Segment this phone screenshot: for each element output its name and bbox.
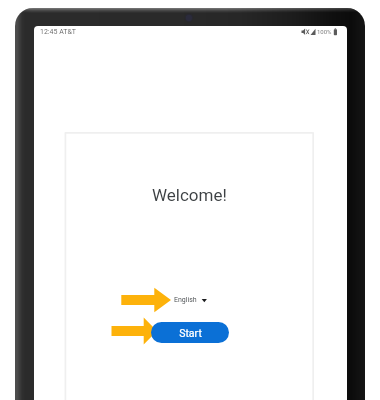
staticText: 100%	[317, 28, 332, 35]
staticText: 12:45 AT&T	[40, 28, 77, 36]
staticText: English	[174, 296, 197, 304]
staticText: Start	[179, 327, 202, 339]
button[interactable]: Select language: English	[174, 293, 208, 307]
button[interactable]: Start	[151, 322, 229, 343]
staticText: Welcome!	[152, 185, 227, 205]
